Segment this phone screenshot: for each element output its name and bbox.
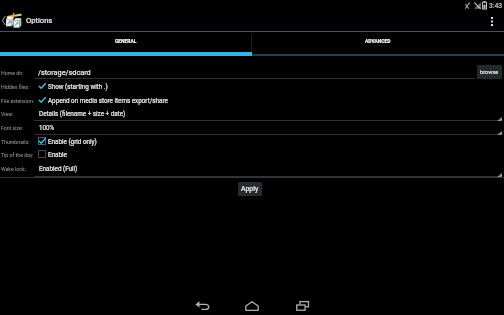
staticText: Font size: xyxy=(1,125,24,131)
button[interactable]: browse xyxy=(477,65,502,79)
staticText: Enabled (Full) xyxy=(39,165,78,172)
button[interactable]: Wake lock: xyxy=(0,163,504,177)
button[interactable]: Hidden files: xyxy=(0,79,504,93)
button[interactable]: Home xyxy=(227,296,277,315)
button[interactable]: Thumbnails: xyxy=(0,135,504,149)
staticText: Enable xyxy=(48,151,67,158)
button[interactable]: File extension: xyxy=(0,93,504,107)
staticText: View: xyxy=(1,111,14,117)
staticText: /storage/sdcard xyxy=(38,68,91,77)
button[interactable]: Font size: xyxy=(0,121,504,135)
button[interactable]: View: xyxy=(0,107,504,121)
button[interactable]: Recent apps xyxy=(277,296,327,315)
staticText: GENERAL xyxy=(115,38,137,44)
staticText: Hidden files: xyxy=(1,84,30,90)
button[interactable]: Home dir: xyxy=(0,65,504,79)
staticText: Thumbnails: xyxy=(1,139,30,145)
button[interactable]: More options xyxy=(480,11,504,32)
button[interactable]: GENERAL xyxy=(0,34,251,56)
staticText: Enable (grid only) xyxy=(48,138,97,145)
button[interactable]: Tip of the day: xyxy=(0,149,504,163)
staticText: browse xyxy=(480,69,499,76)
staticText: Show (starting with .) xyxy=(48,83,108,90)
staticText: Append on media store items export/share xyxy=(48,97,168,104)
staticText: Apply xyxy=(241,185,259,193)
button[interactable]: ADVANCED xyxy=(252,34,504,56)
staticText: Wake lock: xyxy=(1,166,26,172)
staticText: Options xyxy=(26,16,53,25)
staticText: 100% xyxy=(39,124,55,131)
staticText: Tip of the day: xyxy=(1,152,34,158)
staticText: ADVANCED xyxy=(365,38,391,44)
staticText: Details (filename + size + date) xyxy=(39,110,126,117)
staticText: File extension: xyxy=(1,98,35,104)
staticText: 3:43 xyxy=(489,2,503,10)
button[interactable]: Back xyxy=(177,296,227,315)
button[interactable]: Apply xyxy=(238,182,262,196)
staticText: Home dir: xyxy=(1,70,24,76)
